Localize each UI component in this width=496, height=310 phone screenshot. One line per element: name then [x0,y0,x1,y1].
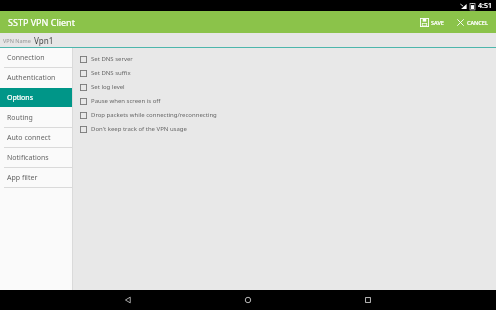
staticText: Connection [7,53,45,63]
staticText: Authentication [7,73,56,83]
button[interactable]: Set DNS server [78,52,496,66]
button[interactable]: Notifications [0,148,72,167]
staticText: Auto connect [7,133,51,143]
button[interactable]: Don't keep track of the VPN usage [78,122,496,136]
staticText: Don't keep track of the VPN usage [91,125,187,133]
staticText: VPN Name [3,37,31,44]
button[interactable]: Auto connect [0,128,72,147]
staticText: 4:51 [478,1,492,11]
staticText: Set DNS server [91,55,133,63]
staticText: Notifications [7,153,49,163]
button[interactable]: App filter [0,168,72,187]
staticText: Drop packets while connecting/reconnecti… [91,111,217,119]
staticText: SSTP VPN Client [8,16,75,28]
button[interactable]: Drop packets while connecting/reconnecti… [78,108,496,122]
staticText: Options [7,93,34,103]
staticText: Pause when screen is off [91,97,161,105]
button[interactable]: Pause when screen is off [78,94,496,108]
button[interactable]: Home [237,290,259,310]
button[interactable]: Cancel [454,16,490,29]
button[interactable]: Save [418,16,446,29]
staticText: Set DNS suffix [91,69,131,77]
button[interactable]: Recent apps [357,290,379,310]
button[interactable]: Set DNS suffix [78,66,496,80]
button[interactable]: Set log level [78,80,496,94]
staticText: CANCEL [467,19,488,26]
staticText: App filter [7,173,38,183]
button[interactable]: VPN Name [0,33,496,47]
button[interactable]: Authentication [0,68,72,87]
staticText: Vpn1 [34,35,54,46]
staticText: SAVE [431,19,444,26]
button[interactable]: Routing [0,108,72,127]
button[interactable]: Connection [0,48,72,67]
staticText: Set log level [91,83,125,91]
button[interactable]: Back [117,290,139,310]
staticText: Routing [7,113,33,123]
button[interactable]: Options [0,88,72,107]
